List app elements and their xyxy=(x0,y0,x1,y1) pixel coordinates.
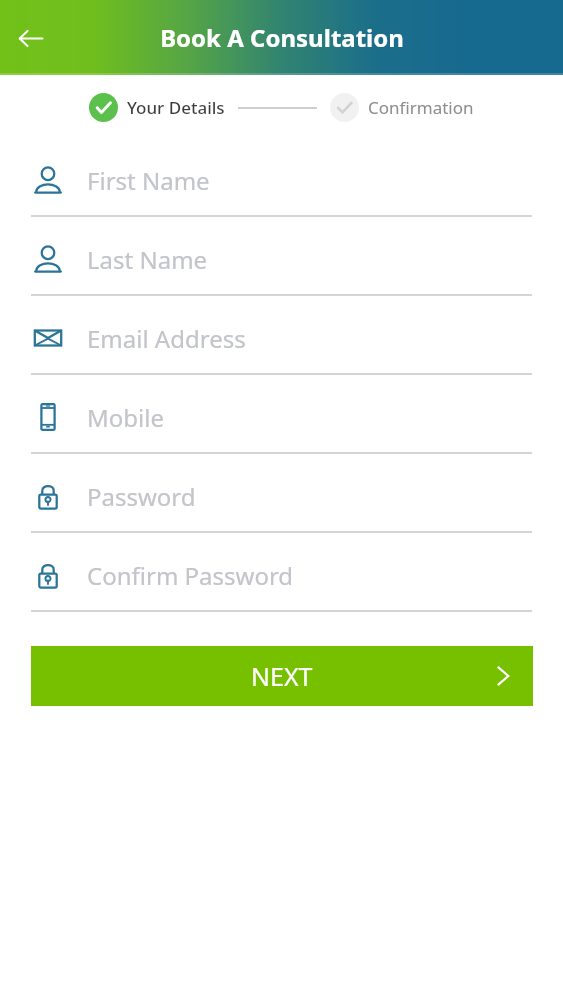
button[interactable]: NEXT xyxy=(31,646,533,706)
button[interactable]: Confirm Password xyxy=(0,540,563,619)
staticText: Email Address xyxy=(87,322,246,355)
staticText: Password xyxy=(87,480,196,513)
button[interactable]: First Name xyxy=(0,145,563,224)
staticText: Mobile xyxy=(87,401,164,434)
staticText: Your Details xyxy=(127,96,225,119)
staticText: NEXT xyxy=(251,659,313,693)
button[interactable]: Last Name xyxy=(0,224,563,303)
button[interactable]: Confirmation xyxy=(330,93,474,122)
staticText: Confirmation xyxy=(368,96,474,119)
staticText: First Name xyxy=(87,164,210,197)
button[interactable]: Back xyxy=(3,11,57,65)
button[interactable]: Mobile xyxy=(0,382,563,461)
staticText: Confirm Password xyxy=(87,559,294,592)
button[interactable]: Password xyxy=(0,461,563,540)
button[interactable]: Your Details xyxy=(89,93,225,122)
button[interactable]: Email Address xyxy=(0,303,563,382)
staticText: Book A Consultation xyxy=(160,21,404,54)
staticText: Last Name xyxy=(87,243,208,276)
